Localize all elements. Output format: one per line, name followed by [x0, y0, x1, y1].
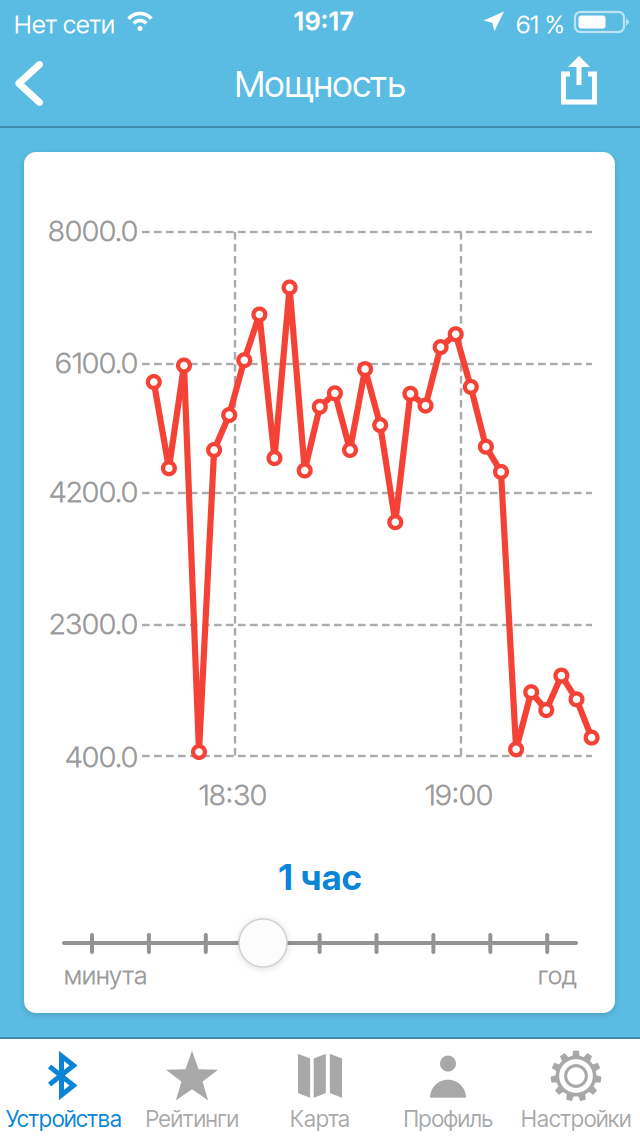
button[interactable]: Настройки	[512, 1039, 640, 1136]
staticText: Рейтинги	[145, 1105, 238, 1132]
button[interactable]: Карта	[256, 1039, 384, 1136]
button[interactable]: Устройства	[0, 1039, 128, 1136]
staticText: 61 %	[516, 9, 564, 40]
staticText: 19:00	[425, 777, 493, 812]
staticText: 19:17	[293, 6, 354, 37]
staticText: 2300.0	[49, 606, 138, 641]
button[interactable]: Share	[550, 48, 608, 110]
staticText: Устройства	[6, 1105, 122, 1132]
staticText: Карта	[290, 1105, 350, 1132]
button[interactable]: Профиль	[384, 1039, 512, 1136]
button[interactable]: Time range	[239, 919, 287, 967]
button[interactable]: Рейтинги	[128, 1039, 256, 1136]
button[interactable]: Back	[0, 52, 56, 114]
staticText: Настройки	[521, 1105, 631, 1132]
staticText: 18:30	[199, 777, 267, 812]
staticText: 1 час	[278, 855, 361, 899]
staticText: Профиль	[403, 1105, 492, 1132]
staticText: Нет сети	[14, 9, 115, 40]
staticText: 400.0	[65, 739, 138, 774]
staticText: Мощность	[234, 62, 405, 106]
staticText: год	[538, 960, 577, 991]
staticText: 6100.0	[55, 345, 138, 380]
staticText: 8000.0	[48, 213, 138, 248]
staticText: 4200.0	[49, 474, 138, 509]
staticText: минута	[64, 960, 147, 991]
